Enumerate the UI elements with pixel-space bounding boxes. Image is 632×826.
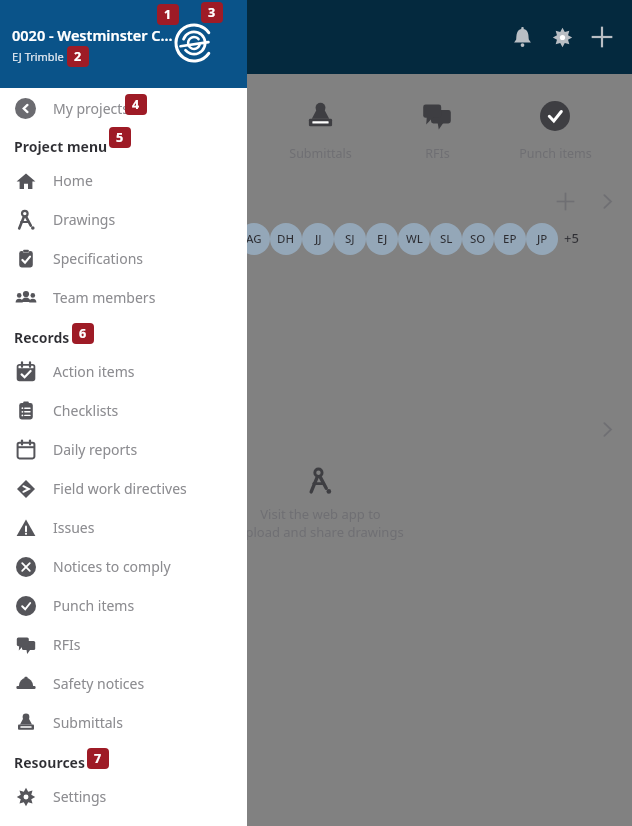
staticText: 3 xyxy=(208,4,216,21)
staticText: Daily reports xyxy=(53,440,138,459)
button[interactable]: Notices to comply xyxy=(0,547,247,586)
button[interactable]: Add team member xyxy=(548,184,582,218)
button[interactable]: Daily reports xyxy=(0,430,247,469)
button[interactable]: Specifications xyxy=(0,239,247,278)
staticText: Drawings xyxy=(53,210,116,229)
staticText: EJ Trimble xyxy=(12,49,64,64)
staticText: 5 xyxy=(116,129,124,146)
button[interactable]: SJ xyxy=(334,223,366,255)
button[interactable]: Notifications xyxy=(502,17,542,57)
button[interactable]: Home xyxy=(0,161,247,200)
staticText: Settings xyxy=(53,787,107,806)
staticText: WL xyxy=(406,231,423,247)
button[interactable]: Add xyxy=(582,17,622,57)
staticText: JP xyxy=(537,231,548,247)
button[interactable]: RFIs xyxy=(389,92,485,166)
button[interactable]: RFIs xyxy=(0,625,247,664)
button[interactable]: Safety notices xyxy=(0,664,247,703)
button[interactable]: My projects xyxy=(0,88,247,128)
staticText: Safety notices xyxy=(53,674,145,693)
button[interactable]: SO xyxy=(462,223,494,255)
staticText: Specifications xyxy=(53,249,144,268)
staticText: RFIs xyxy=(53,635,81,654)
staticText: Issues xyxy=(53,518,95,537)
staticText: +5 xyxy=(564,229,579,247)
staticText: AG xyxy=(246,231,262,247)
staticText: Team members xyxy=(53,288,156,307)
button[interactable]: Punch items xyxy=(507,92,603,166)
staticText: Home xyxy=(53,171,93,190)
staticText: JJ xyxy=(315,231,322,247)
staticText: SL xyxy=(440,231,453,247)
staticText: Notices to comply xyxy=(53,557,171,576)
button[interactable]: EP xyxy=(494,223,526,255)
staticText: 1 xyxy=(164,6,172,23)
staticText: Submittals xyxy=(53,713,123,732)
button[interactable]: Drawings xyxy=(0,200,247,239)
button[interactable]: Issues xyxy=(0,508,247,547)
button[interactable]: Field work directives xyxy=(0,469,247,508)
button[interactable]: Trimble Connect xyxy=(171,20,217,66)
button[interactable]: JJ xyxy=(302,223,334,255)
button[interactable]: Team members xyxy=(0,278,247,317)
staticText: Records xyxy=(14,328,70,347)
button[interactable]: EJ xyxy=(366,223,398,255)
button[interactable]: Submittals xyxy=(0,703,247,742)
staticText: 7 xyxy=(94,750,102,767)
staticText: Punch items xyxy=(519,145,592,162)
staticText: Action items xyxy=(53,362,135,381)
button[interactable]: SL xyxy=(430,223,462,255)
staticText: 4 xyxy=(132,96,140,113)
button[interactable]: JP xyxy=(526,223,558,255)
staticText: Visit the web app to upload and share dr… xyxy=(237,505,404,541)
staticText: 0020 - Westminster C... xyxy=(12,25,173,45)
button[interactable]: DH xyxy=(270,223,302,255)
staticText: Checklists xyxy=(53,401,119,420)
staticText: Submittals xyxy=(289,145,352,162)
staticText: 2 xyxy=(74,48,82,65)
staticText: SO xyxy=(470,231,486,247)
button[interactable]: Punch items xyxy=(0,586,247,625)
staticText: Project menu xyxy=(14,137,108,156)
button[interactable]: Checklists xyxy=(0,391,247,430)
staticText: 6 xyxy=(79,325,87,342)
button[interactable]: Settings xyxy=(542,17,582,57)
staticText: DH xyxy=(277,231,295,247)
button[interactable]: WL xyxy=(398,223,430,255)
staticText: RFIs xyxy=(425,145,450,162)
button[interactable]: Settings xyxy=(0,777,247,816)
button[interactable]: Submittals xyxy=(272,92,368,166)
staticText: EP xyxy=(503,231,517,247)
staticText: Punch items xyxy=(53,596,135,615)
button[interactable]: Action items xyxy=(0,352,247,391)
staticText: Resources xyxy=(14,753,86,772)
staticText: My projects xyxy=(53,99,130,118)
staticText: Field work directives xyxy=(53,479,187,498)
staticText: SJ xyxy=(345,231,355,247)
button[interactable]: AG xyxy=(238,223,270,255)
staticText: EJ xyxy=(377,231,388,247)
